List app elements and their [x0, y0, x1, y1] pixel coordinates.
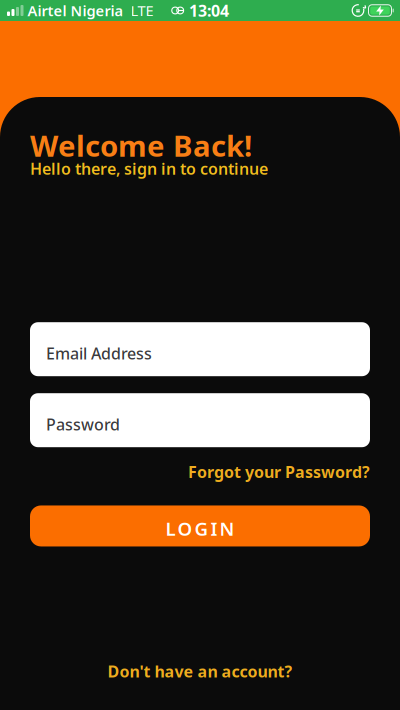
button[interactable]: L O G I N — [30, 505, 370, 546]
staticText: Welcome Back! — [30, 126, 252, 165]
staticText: Airtel Nigeria — [27, 1, 123, 20]
button[interactable]: Forgot your Password? — [188, 461, 370, 482]
staticText: Don't have an account? — [107, 661, 292, 682]
staticText: L O G I N — [165, 516, 234, 541]
button[interactable]: Don't have an account? — [107, 661, 292, 682]
staticText: Email Address — [46, 343, 152, 364]
button[interactable]: Email Address — [30, 322, 370, 376]
staticText: Password — [46, 414, 120, 435]
staticText: Forgot your Password? — [188, 461, 370, 482]
staticText: Hello there, sign in to continue — [30, 158, 268, 179]
button[interactable]: Password — [30, 393, 370, 447]
staticText: 13:04 — [189, 0, 229, 21]
staticText: LTE — [130, 1, 153, 20]
